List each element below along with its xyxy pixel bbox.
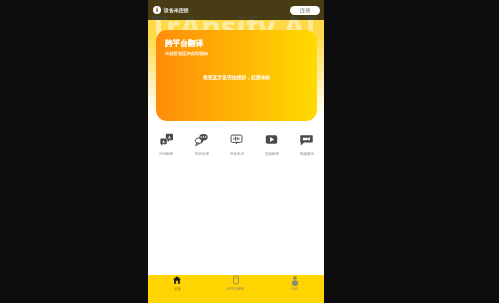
button[interactable]: 同声传译 [184, 133, 219, 156]
staticText: 设备未连接 [164, 7, 189, 13]
staticText: 我的 [291, 287, 298, 291]
button[interactable]: 在线翻译 [254, 133, 289, 156]
staticText: 录音识别 [230, 152, 244, 156]
other: 状态 [153, 6, 161, 14]
staticText: 跨平台翻译 [227, 287, 244, 291]
staticText: 首页 [174, 287, 181, 291]
staticText: 跨平台翻译 [165, 39, 203, 49]
staticText: 视频通话 [300, 152, 314, 156]
staticText: TrAnsify AI [150, 6, 317, 47]
button[interactable]: 跨平台翻译 [206, 276, 265, 303]
button[interactable]: 跨平台翻译 [156, 30, 317, 121]
button[interactable]: 我的 [265, 276, 324, 303]
button[interactable]: 录音识别 [219, 133, 254, 156]
button[interactable]: 对话翻译 [148, 133, 184, 156]
staticText: 检查蓝牙是否连接好，赶紧体验 [203, 74, 271, 80]
staticText: 支持所有应用实时翻译 [165, 51, 208, 56]
button[interactable]: 连接 [290, 6, 320, 15]
staticText: 在线翻译 [265, 152, 279, 156]
staticText: 连接 [300, 7, 311, 14]
button[interactable]: 视频通话 [289, 133, 324, 156]
button[interactable]: 首页 [148, 276, 206, 303]
staticText: 同声传译 [195, 152, 209, 156]
staticText: 对话翻译 [159, 152, 173, 156]
